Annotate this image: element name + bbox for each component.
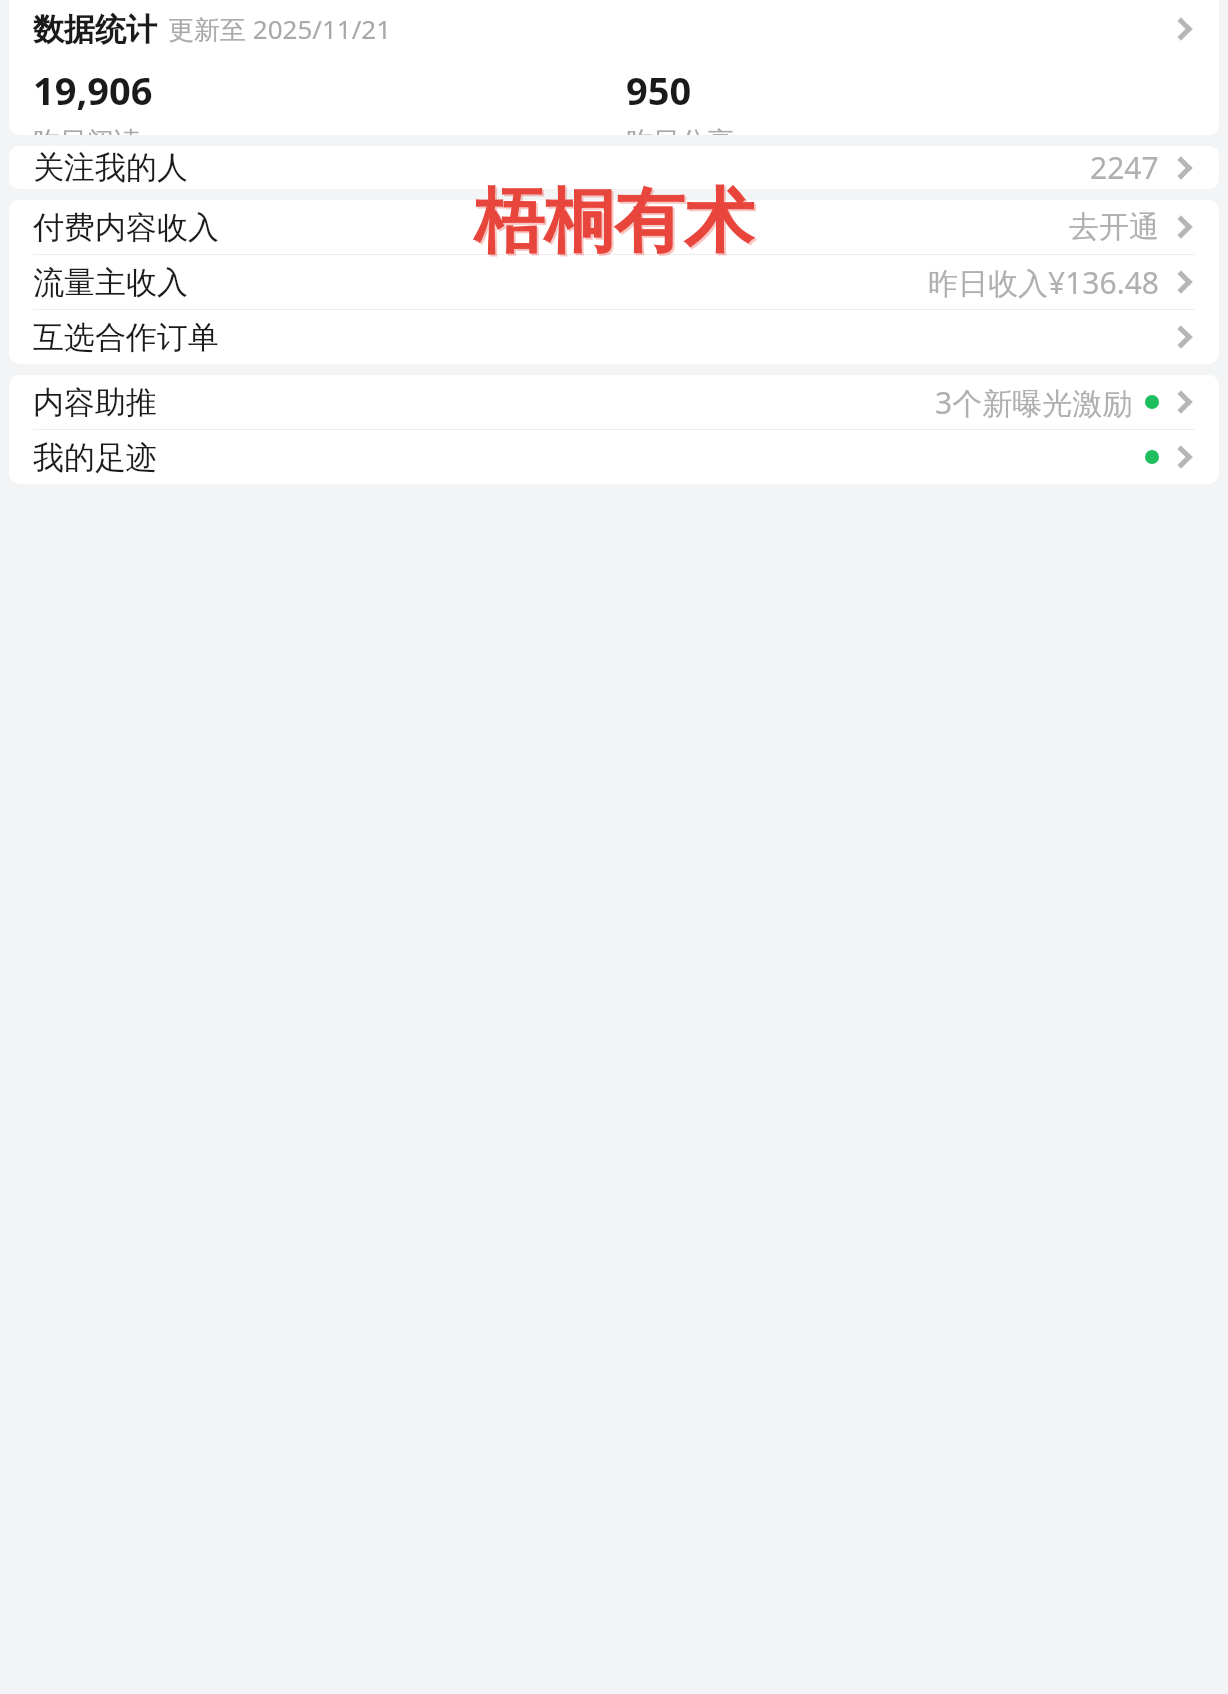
staticText: 付费内容收入 bbox=[33, 208, 219, 247]
staticText: 内容助推 bbox=[33, 383, 157, 422]
staticText: 我的足迹 bbox=[33, 438, 157, 477]
staticText: 更新至 2025/11/21 bbox=[168, 11, 392, 47]
staticText: 数据统计 bbox=[33, 10, 157, 49]
staticText: 去开通 bbox=[1069, 208, 1159, 246]
staticText: 梧桐有术 bbox=[474, 178, 754, 266]
button[interactable]: 流量主收入 bbox=[9, 255, 1219, 309]
staticText: 关注我的人 bbox=[33, 148, 188, 187]
button[interactable]: 互选合作订单 bbox=[9, 310, 1219, 364]
button[interactable]: 关注我的人 bbox=[9, 146, 1219, 189]
staticText: 梧桐有术 bbox=[476, 180, 756, 268]
staticText: 3个新曝光激励 bbox=[935, 382, 1133, 423]
button[interactable]: 我的足迹 bbox=[9, 430, 1219, 484]
button[interactable]: 数据统计 bbox=[9, 0, 1219, 58]
button[interactable]: 内容助推 bbox=[9, 375, 1219, 429]
staticText: 19,906 bbox=[33, 64, 153, 116]
staticText: 流量主收入 bbox=[33, 263, 188, 302]
staticText: 昨日收入¥136.48 bbox=[928, 262, 1159, 303]
staticText: 昨日分享 bbox=[626, 125, 734, 135]
button[interactable]: 付费内容收入 bbox=[9, 200, 1219, 254]
staticText: 昨日阅读 bbox=[33, 125, 141, 135]
staticText: 950 bbox=[626, 64, 692, 116]
staticText: 2247 bbox=[1090, 147, 1159, 188]
staticText: 互选合作订单 bbox=[33, 318, 219, 357]
